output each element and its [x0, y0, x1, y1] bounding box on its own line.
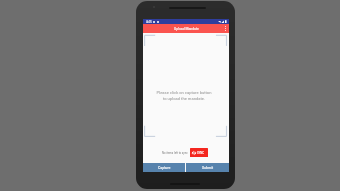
staticText: SYNC	[197, 151, 205, 154]
staticText: Please click on capture button to upload…	[141, 90, 227, 101]
staticText: Submit	[202, 166, 214, 170]
staticText: Capture	[158, 166, 171, 170]
button[interactable]: More options	[221, 24, 229, 33]
staticText: 4:45	[146, 20, 152, 23]
staticText: No items left to sync	[162, 151, 188, 154]
staticText: Upload Mandate	[174, 27, 199, 31]
button[interactable]: Submit	[186, 163, 229, 172]
button[interactable]: Capture	[143, 163, 185, 172]
button[interactable]: SYNC	[190, 148, 208, 157]
